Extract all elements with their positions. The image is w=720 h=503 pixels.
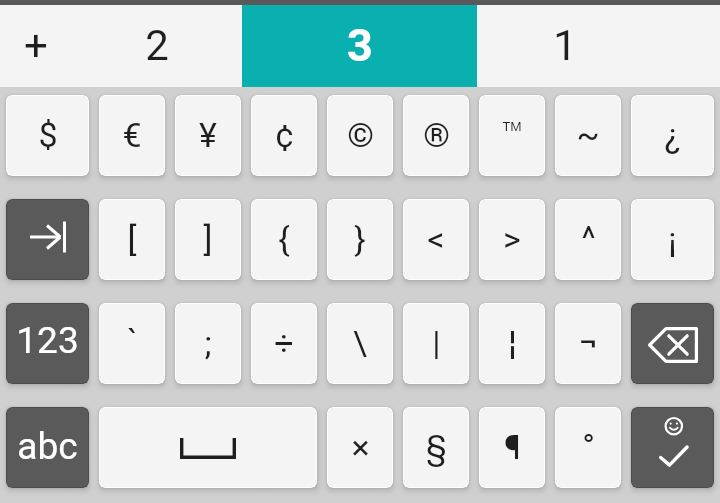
button[interactable]: § (404, 408, 468, 487)
button[interactable]: Tab (7, 200, 88, 279)
staticText: { (278, 219, 290, 259)
staticText: $ (38, 115, 58, 155)
button[interactable]: ÷ (252, 304, 316, 383)
staticText: [ (127, 219, 137, 259)
button[interactable]: × (328, 408, 392, 487)
staticText: ¶ (504, 427, 521, 467)
button[interactable]: abc (7, 408, 88, 487)
button[interactable]: $ (7, 96, 88, 175)
staticText: × (351, 427, 370, 467)
staticText: > (503, 219, 521, 259)
staticText: 1 (553, 21, 577, 70)
staticText: ° (582, 426, 595, 466)
staticText: 2 (145, 21, 169, 70)
button[interactable]: [ (100, 200, 164, 279)
button[interactable]: > (480, 200, 544, 279)
staticText: ¡ (668, 219, 677, 259)
button[interactable]: + (0, 5, 72, 87)
staticText: ÷ (274, 323, 294, 363)
button[interactable]: Enter (632, 408, 713, 487)
staticText: ~ (576, 115, 600, 155)
button[interactable]: } (328, 200, 392, 279)
button[interactable]: { (252, 200, 316, 279)
staticText: ^ (581, 218, 596, 258)
button[interactable]: Space (100, 408, 316, 487)
button[interactable]: ¿ (632, 96, 713, 175)
staticText: ® (423, 115, 450, 155)
staticText: | (432, 323, 441, 363)
staticText: ¥ (199, 115, 217, 155)
button[interactable]: ~ (556, 96, 620, 175)
button[interactable]: 123 (7, 304, 88, 383)
staticText: < (427, 219, 445, 259)
staticText: ¢ (275, 115, 294, 155)
button[interactable]: ¥ (176, 96, 240, 175)
staticText: ; (204, 323, 212, 363)
staticText: } (354, 219, 366, 259)
staticText: ¦ (508, 323, 517, 363)
button[interactable]: Delete (632, 304, 713, 383)
button[interactable]: ® (404, 96, 468, 175)
button[interactable]: ^ (556, 200, 620, 279)
button[interactable]: ; (176, 304, 240, 383)
button[interactable]: ¡ (632, 200, 713, 279)
button[interactable]: 1 (477, 5, 653, 87)
button[interactable]: ¬ (556, 304, 620, 383)
button[interactable]: ] (176, 200, 240, 279)
staticText: 3 (347, 19, 373, 72)
staticText: § (426, 427, 447, 467)
button[interactable]: TM (480, 96, 544, 175)
button[interactable]: < (404, 200, 468, 279)
staticText: ] (203, 219, 213, 259)
staticText: + (24, 21, 48, 70)
button[interactable]: ¦ (480, 304, 544, 383)
button[interactable]: | (404, 304, 468, 383)
button[interactable]: 3 (242, 5, 477, 87)
button[interactable]: ° (556, 408, 620, 487)
button[interactable]: € (100, 96, 164, 175)
staticText: ¬ (579, 321, 598, 361)
button[interactable]: ¶ (480, 408, 544, 487)
staticText: abc (17, 425, 78, 468)
button[interactable]: 2 (72, 5, 242, 87)
staticText: TM (502, 119, 522, 134)
staticText: ¿ (664, 115, 681, 155)
button[interactable]: ` (100, 304, 164, 383)
staticText: € (122, 115, 142, 155)
button[interactable]: \ (328, 304, 392, 383)
staticText: ` (127, 321, 138, 361)
button[interactable]: ¢ (252, 96, 316, 175)
button[interactable]: © (328, 96, 392, 175)
staticText: © (347, 115, 374, 155)
staticText: 123 (16, 319, 79, 362)
staticText: \ (353, 323, 367, 363)
